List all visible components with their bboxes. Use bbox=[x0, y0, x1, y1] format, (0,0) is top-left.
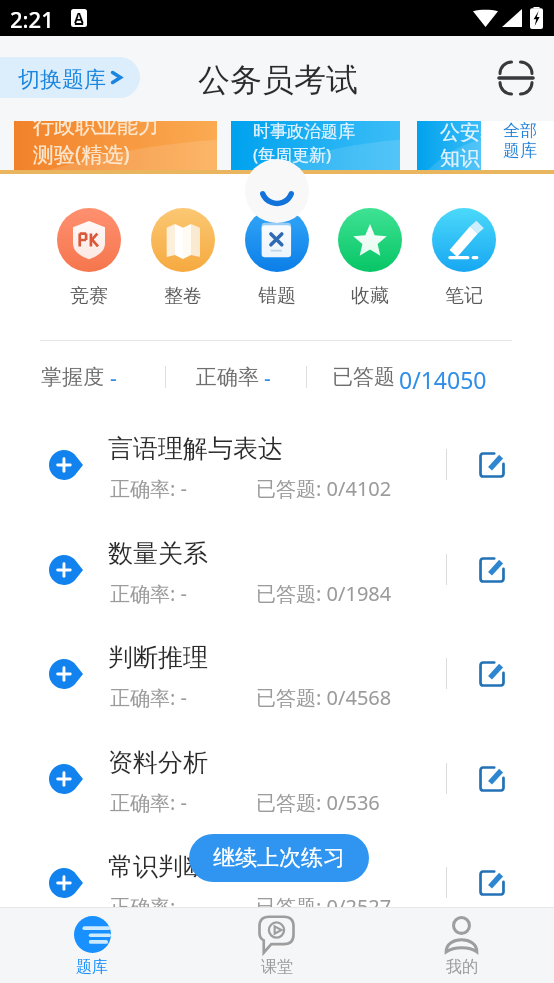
button[interactable]: 整卷 bbox=[136, 200, 230, 310]
staticText: 继续上次练习 bbox=[213, 844, 345, 872]
staticText: 课堂 bbox=[261, 957, 293, 977]
button[interactable]: 资料分析 bbox=[0, 727, 554, 831]
staticText: 公务员考试 bbox=[198, 60, 358, 100]
button[interactable]: Edit bbox=[470, 652, 514, 696]
staticText: 已答题 bbox=[332, 364, 395, 390]
staticText: 竞赛 bbox=[70, 284, 108, 308]
button[interactable]: 继续上次练习 bbox=[189, 834, 369, 882]
staticText: 正确率: - bbox=[110, 893, 187, 920]
staticText: 资料分析 bbox=[108, 747, 208, 778]
button[interactable]: 判断推理 bbox=[0, 622, 554, 726]
staticText: 整卷 bbox=[164, 284, 202, 308]
button[interactable]: 公安基 bbox=[417, 121, 481, 173]
button[interactable]: 时事政治题库 bbox=[231, 121, 400, 173]
staticText: 已答题: 0/1984 bbox=[256, 580, 392, 607]
staticText: 正确率 bbox=[196, 364, 259, 390]
staticText: 笔记 bbox=[445, 284, 483, 308]
button[interactable]: 数量关系 bbox=[0, 518, 554, 622]
staticText: 掌握度 bbox=[41, 364, 104, 390]
staticText: 已答题: 0/4568 bbox=[256, 684, 392, 711]
button[interactable]: 错题 bbox=[230, 200, 324, 310]
button[interactable]: 课堂 bbox=[184, 907, 369, 983]
staticText: 时事政治题库 bbox=[253, 121, 355, 142]
staticText: 知识 bbox=[440, 146, 480, 171]
button[interactable]: 言语理解与表达 bbox=[0, 413, 554, 517]
staticText: 全部 bbox=[503, 120, 537, 141]
staticText: A bbox=[74, 9, 84, 26]
button[interactable]: Edit bbox=[470, 443, 514, 487]
button[interactable]: Edit bbox=[470, 861, 514, 905]
staticText: 0/14050 bbox=[399, 364, 487, 395]
staticText: 正确率: - bbox=[110, 789, 187, 816]
staticText: 行政职业能力 bbox=[33, 121, 159, 139]
staticText: 正确率: - bbox=[110, 475, 187, 502]
staticText: 题库 bbox=[503, 140, 537, 161]
button[interactable]: 我的 bbox=[369, 907, 554, 983]
staticText: 言语理解与表达 bbox=[108, 433, 283, 464]
button[interactable]: Edit bbox=[470, 757, 514, 801]
staticText: 我的 bbox=[446, 957, 478, 977]
staticText: - bbox=[264, 364, 271, 393]
button[interactable]: 常识判断 bbox=[0, 831, 554, 935]
button[interactable]: 竞赛 bbox=[42, 200, 136, 310]
staticText: 公安基 bbox=[440, 121, 481, 145]
staticText: 正确率: - bbox=[110, 580, 187, 607]
button[interactable]: 切换题库 bbox=[0, 57, 140, 98]
staticText: 切换题库 bbox=[18, 66, 106, 94]
staticText: 题库 bbox=[76, 957, 108, 977]
staticText: 已答题: 0/536 bbox=[256, 789, 380, 816]
button[interactable]: 全部 bbox=[481, 121, 554, 173]
button[interactable]: Scan bbox=[494, 56, 538, 100]
staticText: 错题 bbox=[258, 284, 296, 308]
staticText: 收藏 bbox=[351, 284, 389, 308]
button[interactable]: 题库 bbox=[0, 907, 184, 983]
button[interactable]: 笔记 bbox=[417, 200, 511, 310]
staticText: 测验(精选) bbox=[33, 140, 130, 169]
staticText: 正确率: - bbox=[110, 684, 187, 711]
staticText: 常识判断 bbox=[108, 851, 208, 882]
staticText: 判断推理 bbox=[108, 642, 208, 673]
staticText: 已答题: 0/4102 bbox=[256, 475, 392, 502]
staticText: 已答题: 0/2527 bbox=[256, 893, 392, 920]
button[interactable]: 行政职业能力 bbox=[14, 121, 217, 173]
button[interactable]: Edit bbox=[470, 548, 514, 592]
staticText: - bbox=[110, 364, 117, 393]
staticText: 2:21 bbox=[10, 4, 54, 34]
staticText: (每周更新) bbox=[253, 143, 332, 166]
button[interactable]: 收藏 bbox=[323, 200, 417, 310]
staticText: 数量关系 bbox=[108, 538, 208, 569]
